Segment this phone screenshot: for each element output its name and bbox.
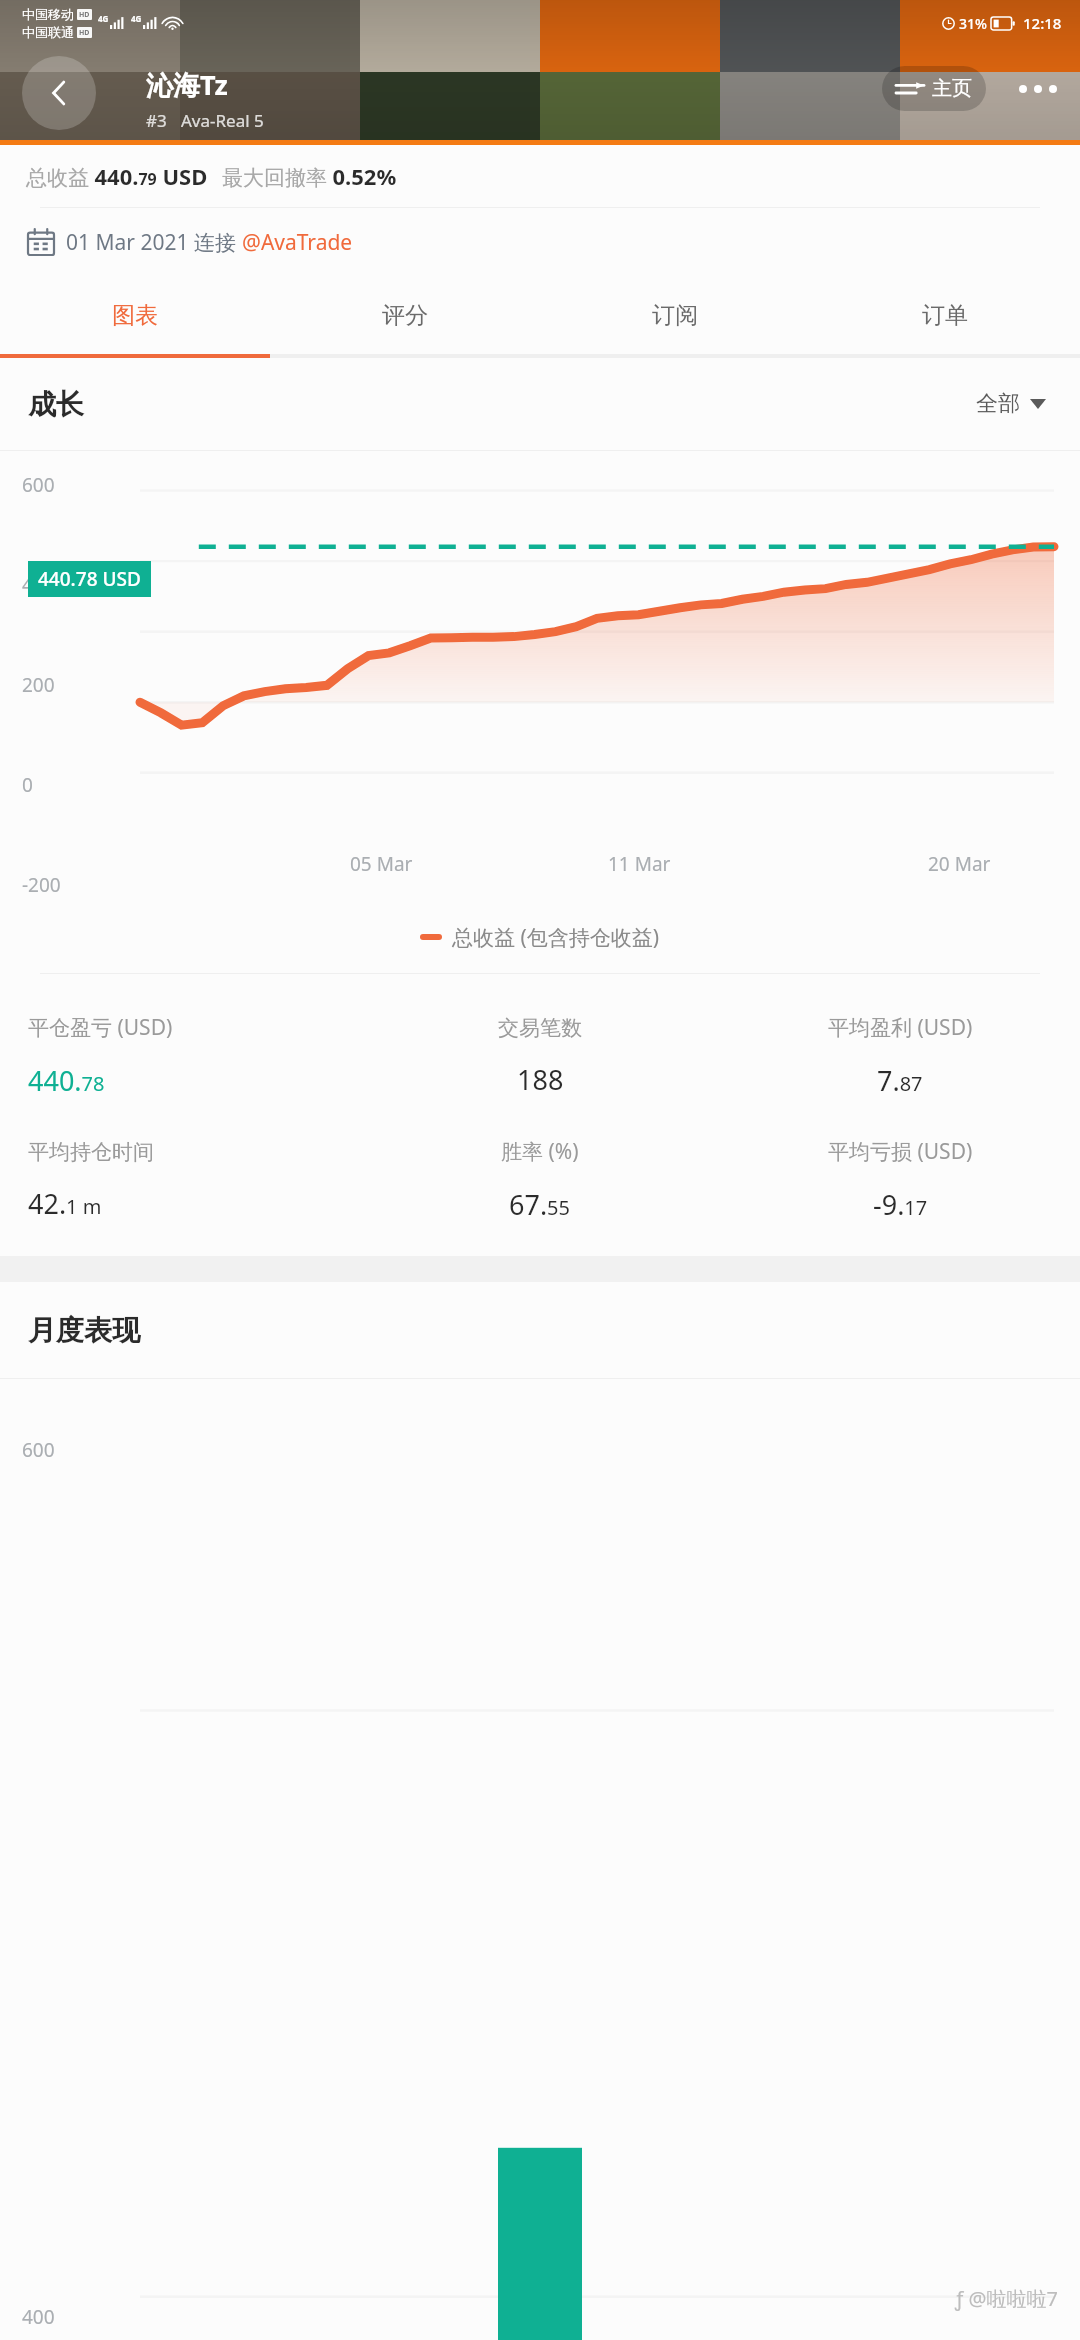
staticText: 31% <box>959 14 987 33</box>
staticText: 400 <box>22 2304 55 2330</box>
staticText: 总收益 440.79 USD <box>26 161 208 191</box>
staticText: 05 Mar <box>350 851 413 877</box>
staticText: 最大回撤率 0.52% <box>222 161 397 191</box>
staticText: 中国联通 <box>22 24 74 40</box>
staticText: 交易笔数 <box>498 1015 582 1041</box>
staticText: 440.78 USD <box>38 566 141 592</box>
button[interactable]: @AvaTrade <box>242 228 353 257</box>
staticText: 沁海Tz <box>146 66 228 103</box>
staticText: HD <box>79 10 90 20</box>
button[interactable]: 主页 <box>882 66 986 111</box>
staticText: 440.78 <box>28 1062 105 1099</box>
staticText: 订单 <box>922 301 968 330</box>
staticText: 42.1 m <box>28 1185 102 1222</box>
staticText: 评分 <box>382 301 428 330</box>
staticText: 订阅 <box>652 301 698 330</box>
button[interactable]: 订阅 <box>540 276 810 354</box>
staticText: 平均盈利 (USD) <box>828 1013 973 1042</box>
staticText: ƒ @啦啦啦7 <box>955 2285 1058 2312</box>
staticText: 中国移动 <box>22 6 74 22</box>
staticText: 4G <box>131 13 142 24</box>
staticText: 成长 <box>28 387 84 422</box>
staticText: 月度表现 <box>28 1313 140 1348</box>
staticText: 总收益 (包含持仓收益) <box>452 923 660 952</box>
staticText: 600 <box>22 1437 55 1463</box>
staticText: #3 <box>146 109 167 132</box>
staticText: 11 Mar <box>608 851 671 877</box>
staticText: 01 Mar 2021 连接 <box>66 228 242 257</box>
staticText: Ava-Real 5 <box>181 109 264 132</box>
staticText: 平均亏损 (USD) <box>828 1137 973 1166</box>
staticText: 胜率 (%) <box>501 1137 579 1166</box>
staticText: 20 Mar <box>928 851 991 877</box>
staticText: 平均持仓时间 <box>28 1139 154 1165</box>
staticText: 67.55 <box>509 1186 571 1223</box>
button[interactable]: 订单 <box>810 276 1080 354</box>
staticText: 7.87 <box>877 1062 923 1099</box>
staticText: 600 <box>22 472 55 498</box>
staticText: 200 <box>22 672 55 698</box>
staticText: -9.17 <box>873 1186 928 1223</box>
staticText: 图表 <box>112 301 158 330</box>
staticText: 平仓盈亏 (USD) <box>28 1013 173 1042</box>
staticText: HD <box>79 28 90 38</box>
staticText: 400 <box>22 572 55 598</box>
staticText: -200 <box>22 872 61 898</box>
button[interactable]: 评分 <box>270 276 540 354</box>
staticText: 188 <box>517 1061 564 1098</box>
staticText: 4G <box>98 13 109 24</box>
button[interactable]: Back <box>22 56 96 130</box>
staticText: 0 <box>22 772 33 798</box>
button[interactable]: 全部 <box>970 384 1052 424</box>
staticText: 主页 <box>932 76 972 101</box>
button[interactable]: 图表 <box>0 276 270 354</box>
button[interactable]: More options <box>1008 59 1068 119</box>
staticText: 12:18 <box>1023 13 1062 33</box>
staticText: 全部 <box>976 390 1020 418</box>
